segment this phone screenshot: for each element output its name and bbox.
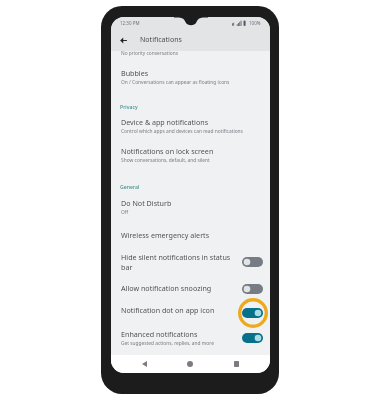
button[interactable]: Device & app notifications: [111, 115, 270, 141]
staticText: No priority conversations: [121, 50, 178, 57]
button[interactable]: Hide silent notifications in status bar: [111, 252, 270, 270]
button[interactable]: Back: [137, 357, 151, 371]
staticText: Enhanced notifications: [121, 329, 198, 339]
staticText: On / Conversations can appear as floatin…: [121, 79, 230, 86]
staticText: Privacy: [120, 103, 138, 110]
button[interactable]: Bubbles: [111, 66, 270, 92]
staticText: Notification dot on app icon: [121, 305, 215, 315]
staticText: Bubbles: [121, 68, 149, 78]
staticText: Hide silent notifications in status bar: [121, 252, 234, 270]
staticText: 12:30 PM: [120, 20, 140, 26]
button[interactable]: Notifications on lock screen: [111, 144, 270, 170]
staticText: Notifications: [140, 34, 182, 44]
staticText: Get suggested actions, replies, and more: [121, 340, 214, 347]
button[interactable]: Recent apps: [229, 357, 243, 371]
staticText: Wireless emergency alerts: [121, 230, 210, 240]
button[interactable]: Enhanced notifications: [111, 329, 270, 353]
button[interactable]: Home: [183, 357, 197, 371]
staticText: Off: [121, 209, 129, 216]
staticText: General: [120, 183, 140, 190]
staticText: Device & app notifications: [121, 117, 209, 127]
button[interactable]: Do Not Disturb: [111, 196, 270, 222]
button[interactable]: Wireless emergency alerts: [111, 228, 270, 246]
staticText: Do Not Disturb: [121, 198, 172, 208]
button[interactable]: Allow notification snoozing: [111, 283, 270, 301]
staticText: Show conversations, default, and silent: [121, 157, 210, 164]
staticText: Allow notification snoozing: [121, 283, 212, 293]
button[interactable]: Back: [115, 32, 131, 48]
staticText: Notifications on lock screen: [121, 146, 214, 156]
staticText: Control which apps and devices can read …: [121, 128, 243, 135]
button[interactable]: Notification dot on app icon: [111, 305, 270, 323]
staticText: 100%: [249, 20, 261, 26]
